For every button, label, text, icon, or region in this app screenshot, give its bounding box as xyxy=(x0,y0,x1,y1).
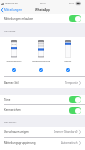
button[interactable]: Banner-Stil xyxy=(0,77,85,88)
staticText: Immer (Standard) xyxy=(54,130,78,134)
button[interactable]: Sperrbildschirm xyxy=(1,40,27,72)
button[interactable]: Banner xyxy=(55,40,81,72)
staticText: HINWEISE xyxy=(4,29,16,32)
button[interactable]: Töne xyxy=(69,96,81,103)
staticText: 09:41 xyxy=(40,2,46,5)
staticText: WhatsApp xyxy=(35,8,50,12)
button[interactable]: Kennzeichen xyxy=(0,105,85,115)
button[interactable]: Mitteilungen erlauben xyxy=(69,15,81,22)
staticText: 93 % xyxy=(69,2,75,5)
staticText: Temporär xyxy=(65,81,78,85)
staticText: Sperrbildschirm xyxy=(1,60,27,63)
staticText: Telekom-DE xyxy=(5,2,18,5)
button[interactable]: Mitteilungen xyxy=(0,6,25,14)
staticText: Kennzeichen xyxy=(4,108,21,112)
staticText: OPTIONEN xyxy=(4,120,17,123)
staticText: Vorschauen zeigen xyxy=(4,130,29,134)
staticText: Mitteilungen xyxy=(4,8,23,12)
button[interactable]: Kennzeichen xyxy=(69,107,81,114)
button[interactable]: Mitteilungsgruppierung xyxy=(0,138,85,148)
staticText: Mitteilungszentrale xyxy=(28,60,54,63)
button[interactable]: Mitteilungen erlauben xyxy=(0,14,85,23)
button[interactable]: Töne xyxy=(0,95,85,104)
staticText: Mitteilungsgruppierung xyxy=(4,141,36,145)
staticText: Banner xyxy=(55,60,81,63)
staticText: Automatisch xyxy=(61,141,78,145)
staticText: Mitteilungen erlauben xyxy=(4,17,34,21)
staticText: Banner-Stil xyxy=(4,81,19,85)
button[interactable]: Mitteilungszentrale xyxy=(28,40,54,72)
staticText: Töne xyxy=(4,98,11,102)
button[interactable]: Vorschauen zeigen xyxy=(0,127,85,137)
